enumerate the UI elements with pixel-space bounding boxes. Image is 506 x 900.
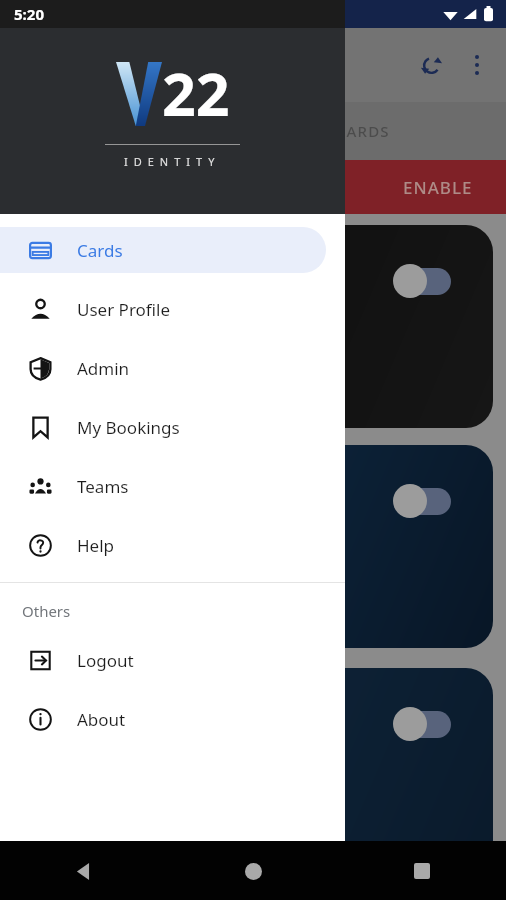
staticText: User Profile xyxy=(77,298,171,321)
staticText: Logout xyxy=(77,649,134,672)
staticText: Cards xyxy=(77,239,123,262)
button[interactable]: Teams xyxy=(0,463,326,509)
button[interactable]: ENABLE xyxy=(0,160,506,214)
staticText: About xyxy=(77,708,126,731)
button[interactable]: Toggle card xyxy=(402,711,451,738)
staticText: Teams xyxy=(77,475,129,498)
button[interactable]: Recent apps xyxy=(398,847,446,895)
button[interactable]: About xyxy=(0,696,326,742)
button[interactable]: Toggle card xyxy=(17,668,493,871)
staticText: Help xyxy=(77,534,115,557)
button[interactable]: Details xyxy=(36,362,169,411)
staticText: IDENTITY xyxy=(124,154,221,169)
button[interactable]: Toggle card xyxy=(402,268,451,295)
staticText: ENABLE xyxy=(403,176,473,199)
button[interactable]: Sync xyxy=(408,42,454,88)
button[interactable]: My Bookings xyxy=(0,404,326,450)
button[interactable]: Help xyxy=(0,522,326,568)
button[interactable]: Details xyxy=(36,805,169,854)
staticText: WASH CARDS xyxy=(283,121,390,141)
button[interactable]: Cards xyxy=(0,227,326,273)
staticText: 22 xyxy=(162,53,230,133)
button[interactable]: WASH CARDS xyxy=(0,102,506,160)
button[interactable]: Back xyxy=(60,847,108,895)
button[interactable]: Admin xyxy=(0,345,326,391)
button[interactable]: More options xyxy=(454,42,500,88)
button[interactable]: Home xyxy=(229,847,277,895)
staticText: 5:20 xyxy=(14,4,44,24)
staticText: Admin xyxy=(77,357,130,380)
button[interactable]: Details xyxy=(36,582,169,631)
staticText: My Bookings xyxy=(77,416,180,439)
button[interactable]: Logout xyxy=(0,637,326,683)
staticText: Others xyxy=(22,601,71,621)
button[interactable]: User Profile xyxy=(0,286,326,332)
button[interactable]: Toggle card xyxy=(17,225,493,428)
button[interactable]: Toggle card xyxy=(17,445,493,648)
button[interactable]: Toggle card xyxy=(402,488,451,515)
